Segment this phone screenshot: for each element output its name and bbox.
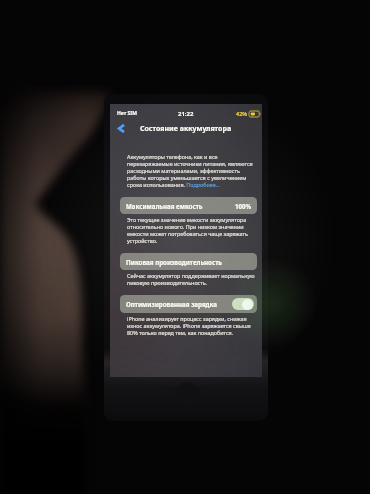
- staticText: Оптимизированная зарядка: [126, 300, 217, 308]
- staticText: Пиковая производительность: [126, 258, 222, 266]
- button[interactable]: Оптимизированная зарядка: [232, 298, 254, 310]
- staticText: Это текущее значение емкости аккумулятор…: [127, 216, 248, 244]
- staticText: 21:22: [178, 110, 194, 118]
- staticText: 100%: [235, 202, 252, 210]
- button[interactable]: Оптимизированная зарядка: [120, 295, 257, 313]
- staticText: iPhone анализирует процесс зарядки, сниж…: [127, 315, 251, 336]
- staticText: Сейчас аккумулятор поддерживает нормальн…: [127, 272, 255, 286]
- staticText: Состояние аккумулятора: [140, 124, 232, 134]
- staticText: Аккумуляторы телефона, как и все перезар…: [127, 153, 253, 188]
- staticText: Максимальная емкость: [126, 202, 203, 210]
- staticText: Нет SIM: [117, 110, 137, 117]
- staticText: 42%: [236, 110, 248, 117]
- button[interactable]: Максимальная емкость: [120, 197, 257, 214]
- button[interactable]: Пиковая производительность: [120, 253, 257, 270]
- button[interactable]: Назад: [114, 121, 129, 136]
